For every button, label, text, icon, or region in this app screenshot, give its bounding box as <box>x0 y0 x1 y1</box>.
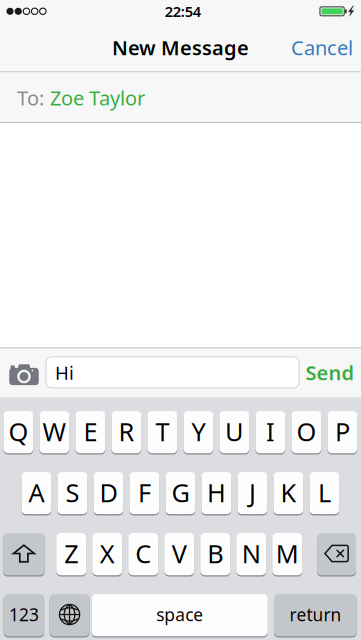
button[interactable]: 123 <box>4 593 44 637</box>
button[interactable]: D <box>93 471 123 515</box>
staticText: V <box>172 537 187 570</box>
button[interactable]: J <box>237 471 267 515</box>
staticText: 123 <box>9 603 39 626</box>
button[interactable]: B <box>200 532 230 576</box>
staticText: I <box>266 415 275 448</box>
button[interactable]: F <box>129 471 159 515</box>
button[interactable]: C <box>128 532 158 576</box>
button[interactable]: Z <box>56 532 86 576</box>
staticText: Y <box>191 415 205 448</box>
button[interactable]: Q <box>3 410 33 454</box>
button[interactable]: G <box>165 471 195 515</box>
button[interactable]: U <box>219 410 249 454</box>
staticText: Cancel <box>291 34 353 61</box>
staticText: L <box>318 476 331 509</box>
staticText: To: <box>17 84 44 111</box>
staticText: H <box>207 476 226 509</box>
button[interactable]: T <box>147 410 177 454</box>
staticText: Hi <box>55 360 74 385</box>
staticText: space <box>156 603 203 626</box>
button[interactable]: Shift <box>3 532 45 576</box>
button[interactable]: Delete <box>317 532 356 576</box>
button[interactable]: Take photo <box>0 347 46 397</box>
staticText: A <box>28 476 44 509</box>
staticText: F <box>138 476 151 509</box>
button[interactable]: N <box>236 532 266 576</box>
staticText: 22:54 <box>165 2 201 21</box>
staticText: Z <box>64 537 78 570</box>
button[interactable]: L <box>309 471 339 515</box>
staticText: E <box>83 415 97 448</box>
staticText: T <box>155 415 169 448</box>
staticText: R <box>118 415 134 448</box>
staticText: W <box>42 415 66 448</box>
button[interactable]: E <box>75 410 105 454</box>
button[interactable]: Cancel <box>283 23 361 72</box>
button[interactable]: R <box>111 410 141 454</box>
staticText: Send <box>305 359 354 386</box>
button[interactable]: S <box>57 471 87 515</box>
staticText: G <box>171 476 189 509</box>
button[interactable]: return <box>274 593 357 637</box>
staticText: K <box>280 476 296 509</box>
button[interactable]: M <box>272 532 302 576</box>
staticText: D <box>99 476 117 509</box>
button[interactable]: A <box>21 471 51 515</box>
button[interactable]: H <box>201 471 231 515</box>
staticText: P <box>335 415 350 448</box>
button[interactable]: W <box>39 410 69 454</box>
button[interactable]: Y <box>183 410 213 454</box>
button[interactable]: V <box>164 532 194 576</box>
button[interactable]: I <box>255 410 285 454</box>
staticText: return <box>289 603 341 626</box>
staticText: X <box>100 537 115 570</box>
staticText: S <box>65 476 79 509</box>
staticText: Q <box>8 415 28 448</box>
staticText: New Message <box>112 34 249 61</box>
button[interactable]: K <box>273 471 303 515</box>
staticText: M <box>276 537 299 570</box>
staticText: B <box>207 537 223 570</box>
staticText: J <box>249 476 256 509</box>
button[interactable]: O <box>291 410 321 454</box>
button[interactable]: X <box>92 532 122 576</box>
staticText: C <box>135 537 151 570</box>
button[interactable]: P <box>327 410 357 454</box>
staticText: O <box>296 415 316 448</box>
staticText: Zoe Taylor <box>50 84 145 111</box>
staticText: U <box>225 415 244 448</box>
button[interactable]: Send <box>299 347 361 397</box>
staticText: N <box>242 537 261 570</box>
button[interactable]: space <box>91 593 268 637</box>
button[interactable]: To: <box>0 72 361 123</box>
button[interactable]: Next keyboard <box>50 593 89 637</box>
